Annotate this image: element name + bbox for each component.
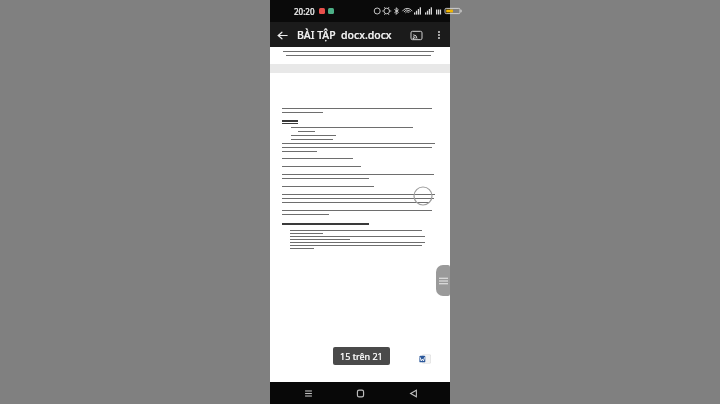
button[interactable]: Recents [293, 382, 323, 404]
button[interactable]: Open in Word [409, 343, 440, 374]
button[interactable]: Scroll handle [436, 265, 450, 296]
button[interactable]: Cast [404, 23, 428, 47]
staticText: 20:20 [294, 6, 315, 17]
button[interactable]: More options [428, 24, 450, 46]
button[interactable]: Back [270, 23, 294, 47]
staticText: 15 trên 21 [340, 350, 383, 362]
button[interactable]: Home [345, 382, 375, 404]
button[interactable]: Back [398, 382, 428, 404]
staticText: BÀI TẬP docx.docx [297, 28, 404, 42]
button[interactable]: 15 trên 21 [333, 347, 390, 365]
